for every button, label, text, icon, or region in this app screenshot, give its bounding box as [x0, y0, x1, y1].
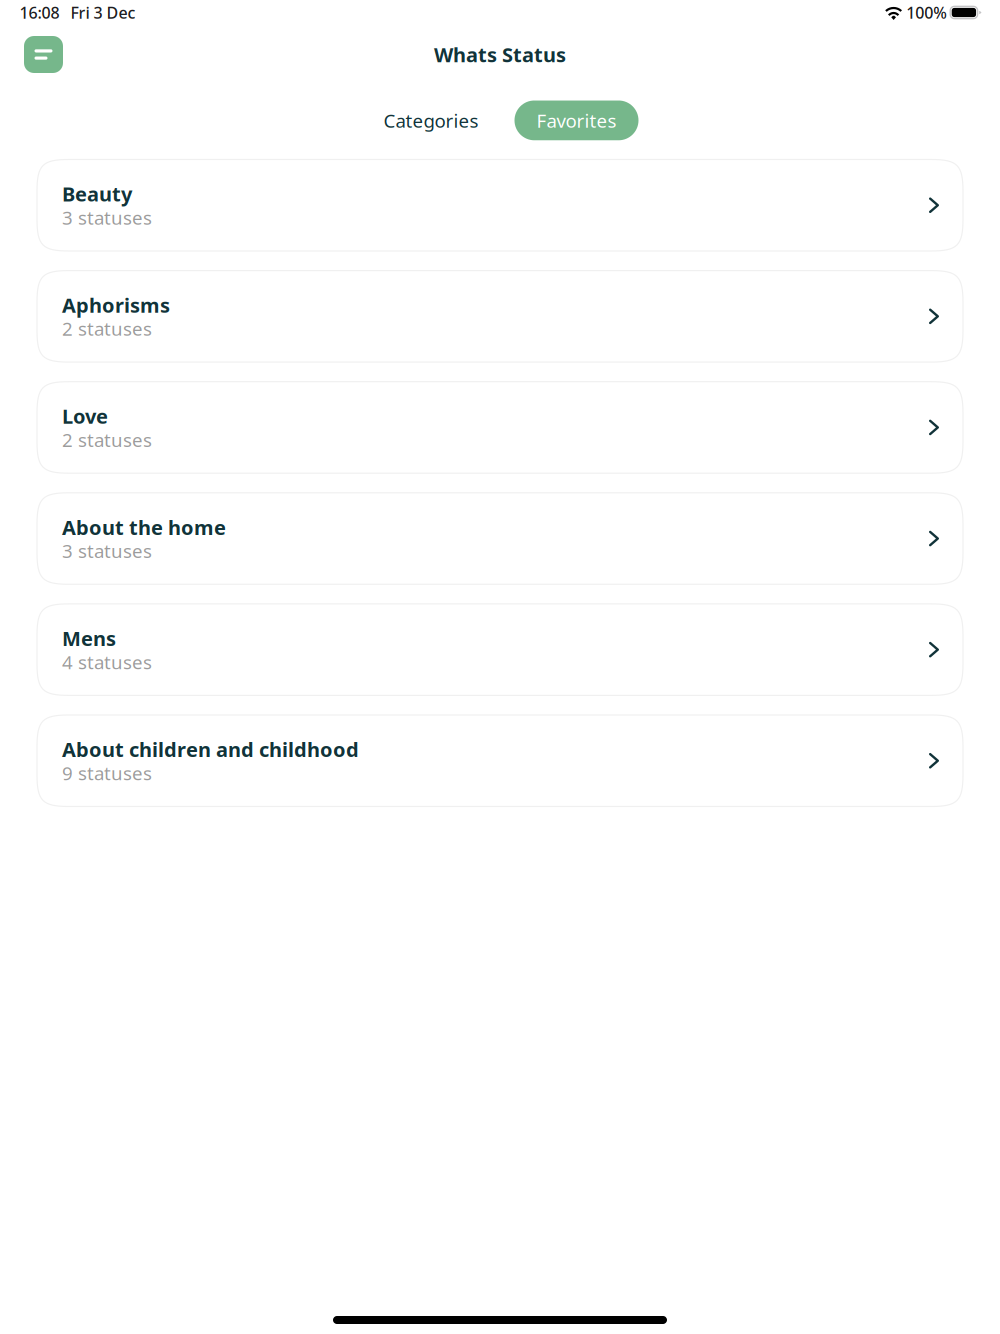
staticText: Love — [62, 403, 108, 429]
staticText: Mens — [62, 625, 116, 652]
staticText: Fri 3 Dec — [70, 2, 135, 23]
button[interactable]: Love — [37, 382, 963, 473]
staticText: Aphorisms — [62, 292, 170, 318]
staticText: Categories — [383, 108, 478, 133]
staticText: 2 statuses — [62, 316, 152, 341]
button[interactable]: Aphorisms — [37, 271, 963, 362]
staticText: 2 statuses — [62, 427, 152, 452]
staticText: Favorites — [536, 108, 616, 133]
staticText: 3 statuses — [62, 538, 152, 563]
button[interactable]: Menu — [24, 36, 63, 73]
staticText: 9 statuses — [62, 761, 152, 785]
button[interactable]: Categories — [361, 100, 500, 140]
staticText: Beauty — [62, 181, 132, 207]
button[interactable]: Favorites — [514, 100, 638, 140]
button[interactable]: About the home — [37, 493, 963, 584]
button[interactable]: Beauty — [37, 159, 963, 251]
button[interactable]: About children and childhood — [37, 715, 963, 806]
staticText: About children and childhood — [62, 736, 359, 763]
staticText: Whats Status — [434, 41, 566, 68]
staticText: About the home — [62, 514, 226, 540]
staticText: 4 statuses — [62, 649, 152, 674]
staticText: 100% — [906, 2, 947, 23]
staticText: 3 statuses — [62, 205, 152, 230]
button[interactable]: Mens — [37, 604, 963, 695]
staticText: 16:08 — [19, 2, 59, 23]
